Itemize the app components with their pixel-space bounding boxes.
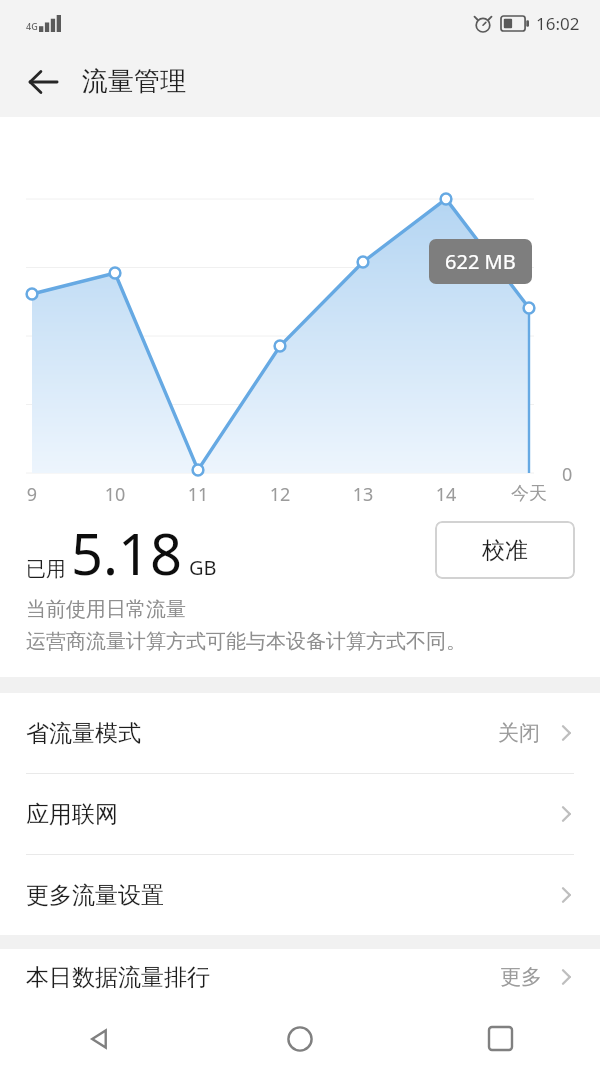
staticText: 622 MB	[445, 248, 516, 275]
staticText: 0	[562, 462, 573, 487]
staticText: 省流量模式	[26, 719, 141, 748]
staticText: 13	[341, 482, 385, 507]
staticText: 已用	[26, 557, 66, 582]
staticText: 更多	[500, 964, 542, 990]
other: Alarm	[474, 15, 492, 33]
staticText: 流量管理	[82, 65, 186, 98]
staticText: 12	[258, 482, 302, 507]
staticText: 16:02	[536, 12, 580, 35]
staticText: 4G	[26, 20, 38, 32]
staticText: 当前使用日常流量	[26, 597, 186, 622]
staticText: 关闭	[498, 720, 540, 746]
staticText: 5.18	[71, 515, 183, 591]
staticText: 运营商流量计算方式可能与本设备计算方式不同。	[26, 629, 466, 654]
button[interactable]: 省流量模式	[0, 693, 600, 773]
button[interactable]: Recents	[400, 1010, 600, 1067]
button[interactable]: Home	[200, 1010, 400, 1067]
button[interactable]: Back	[0, 1010, 200, 1067]
staticText: 14	[424, 482, 468, 507]
staticText: GB	[189, 554, 217, 581]
staticText: 更多流量设置	[26, 881, 164, 910]
button[interactable]: 应用联网	[0, 774, 600, 854]
button[interactable]: 更多流量设置	[0, 855, 600, 935]
staticText: 11	[176, 482, 220, 507]
button[interactable]: Back	[16, 55, 70, 109]
staticText: 校准	[482, 536, 528, 565]
staticText: 9	[10, 482, 54, 507]
staticText: 应用联网	[26, 800, 118, 829]
button[interactable]: 校准	[435, 521, 575, 579]
staticText: 今天	[507, 482, 551, 505]
staticText: 本日数据流量排行	[26, 963, 210, 992]
staticText: 10	[93, 482, 137, 507]
button[interactable]: 本日数据流量排行	[0, 949, 600, 1005]
other: Battery	[501, 16, 529, 31]
